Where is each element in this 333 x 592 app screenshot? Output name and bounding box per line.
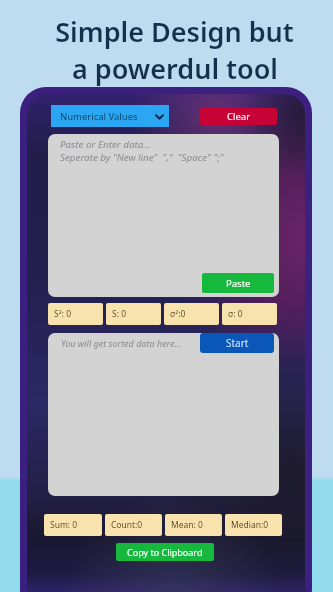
staticText: Count:0 [111, 519, 143, 531]
staticText: Simple Design but [55, 13, 294, 50]
staticText: Sum: 0 [50, 519, 78, 531]
button[interactable]: Numerical Values [51, 105, 169, 127]
staticText: Paste [226, 277, 251, 290]
staticText: σ²:0 [170, 308, 186, 320]
button[interactable]: Median:0 [225, 514, 282, 536]
staticText: S: 0 [112, 308, 127, 320]
staticText: Numerical Values [60, 110, 138, 123]
staticText: You will get sorted data here... [61, 337, 182, 349]
staticText: Paste or Enter data... [60, 138, 151, 151]
button[interactable]: σ: 0 [222, 303, 277, 325]
button[interactable]: Paste [202, 273, 274, 293]
button[interactable]: Paste or Enter data... [48, 134, 279, 297]
button[interactable]: You will get sorted data here... [48, 333, 279, 496]
button[interactable]: Copy to Clipboard [116, 543, 214, 561]
button[interactable]: Count:0 [105, 514, 162, 536]
button[interactable]: σ²:0 [164, 303, 219, 325]
button[interactable]: Clear [200, 108, 277, 125]
staticText: Median:0 [231, 519, 269, 531]
button[interactable]: Start [200, 333, 274, 353]
button[interactable]: Mean: 0 [165, 514, 222, 536]
button[interactable]: S²: 0 [48, 303, 103, 325]
staticText: Start [226, 336, 249, 350]
button[interactable]: S: 0 [106, 303, 161, 325]
button[interactable]: Sum: 0 [44, 514, 102, 536]
staticText: a powerdul tool [72, 50, 278, 87]
staticText: Seperate by "New line" "," "Space" ";" [60, 151, 224, 164]
staticText: Copy to Clipboard [127, 546, 203, 558]
staticText: Mean: 0 [171, 519, 203, 531]
staticText: S²: 0 [54, 308, 71, 320]
staticText: Clear [227, 110, 251, 123]
staticText: σ: 0 [228, 308, 243, 320]
